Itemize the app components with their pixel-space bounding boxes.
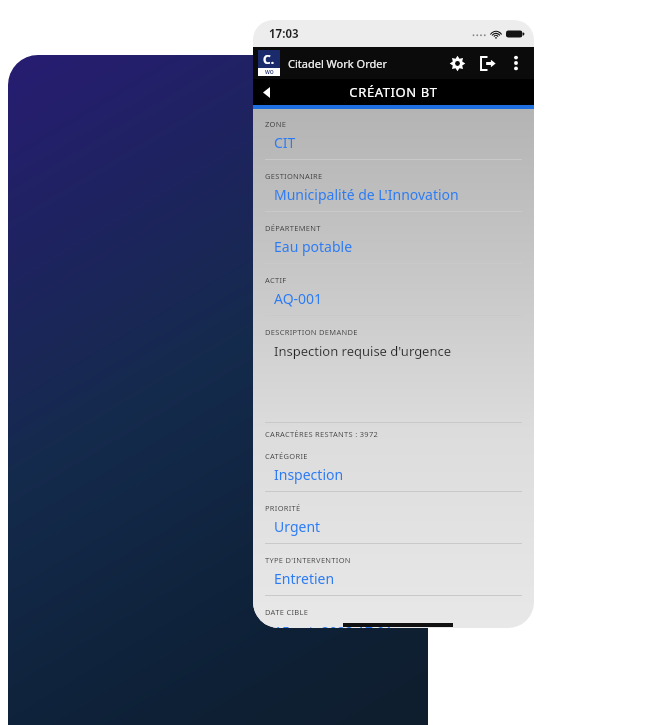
staticText: DÉPARTEMENT (265, 223, 321, 233)
button[interactable]: Citadel logo (258, 50, 280, 76)
button[interactable]: Log out (472, 48, 502, 78)
button[interactable]: CATÉGORIE (265, 439, 522, 492)
staticText: CATÉGORIE (265, 451, 308, 461)
button[interactable]: TYPE D'INTERVENTION (265, 544, 522, 596)
staticText: Municipalité de L'Innovation (274, 185, 459, 204)
button[interactable]: More options (502, 49, 530, 77)
button[interactable]: ACTIF (265, 264, 522, 316)
staticText: C. (263, 51, 275, 67)
button[interactable]: DÉPARTEMENT (265, 212, 522, 264)
staticText: TYPE D'INTERVENTION (265, 555, 351, 565)
staticText: PRIORITÉ (265, 503, 301, 513)
staticText: DATE CIBLE (265, 607, 309, 617)
button[interactable]: PRIORITÉ (265, 492, 522, 544)
staticText: Urgent (274, 517, 321, 536)
staticText: Eau potable (274, 237, 353, 256)
staticText: 15 oct. 2022 17:01 (274, 622, 393, 628)
button[interactable]: Back (253, 79, 279, 105)
staticText: CARACTÈRES RESTANTS : 3972 (265, 429, 379, 439)
staticText: Inspection (274, 465, 344, 484)
button[interactable]: ZONE (265, 109, 522, 160)
staticText: Entretien (274, 569, 335, 588)
button[interactable]: Settings (442, 48, 472, 78)
staticText: ZONE (265, 119, 287, 129)
button[interactable]: GESTIONNAIRE (265, 160, 522, 212)
staticText: Citadel Work Order (288, 56, 387, 71)
staticText: GESTIONNAIRE (265, 171, 323, 181)
staticText: DESCRIPTION DEMANDE (265, 327, 358, 337)
staticText: CRÉATION BT (349, 83, 438, 101)
staticText: Inspection requise d'urgence (274, 342, 452, 360)
staticText: 17:03 (269, 26, 299, 42)
staticText: WO (265, 69, 274, 76)
staticText: AQ-001 (274, 289, 323, 308)
staticText: ACTIF (265, 275, 287, 285)
staticText: CIT (274, 133, 296, 152)
